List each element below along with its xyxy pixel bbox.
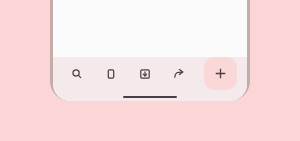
button[interactable]: Download (134, 63, 156, 85)
button[interactable]: Forward (168, 63, 190, 85)
button[interactable]: Search (66, 63, 88, 85)
button[interactable]: Add (204, 57, 237, 90)
button[interactable]: Device (100, 63, 122, 85)
